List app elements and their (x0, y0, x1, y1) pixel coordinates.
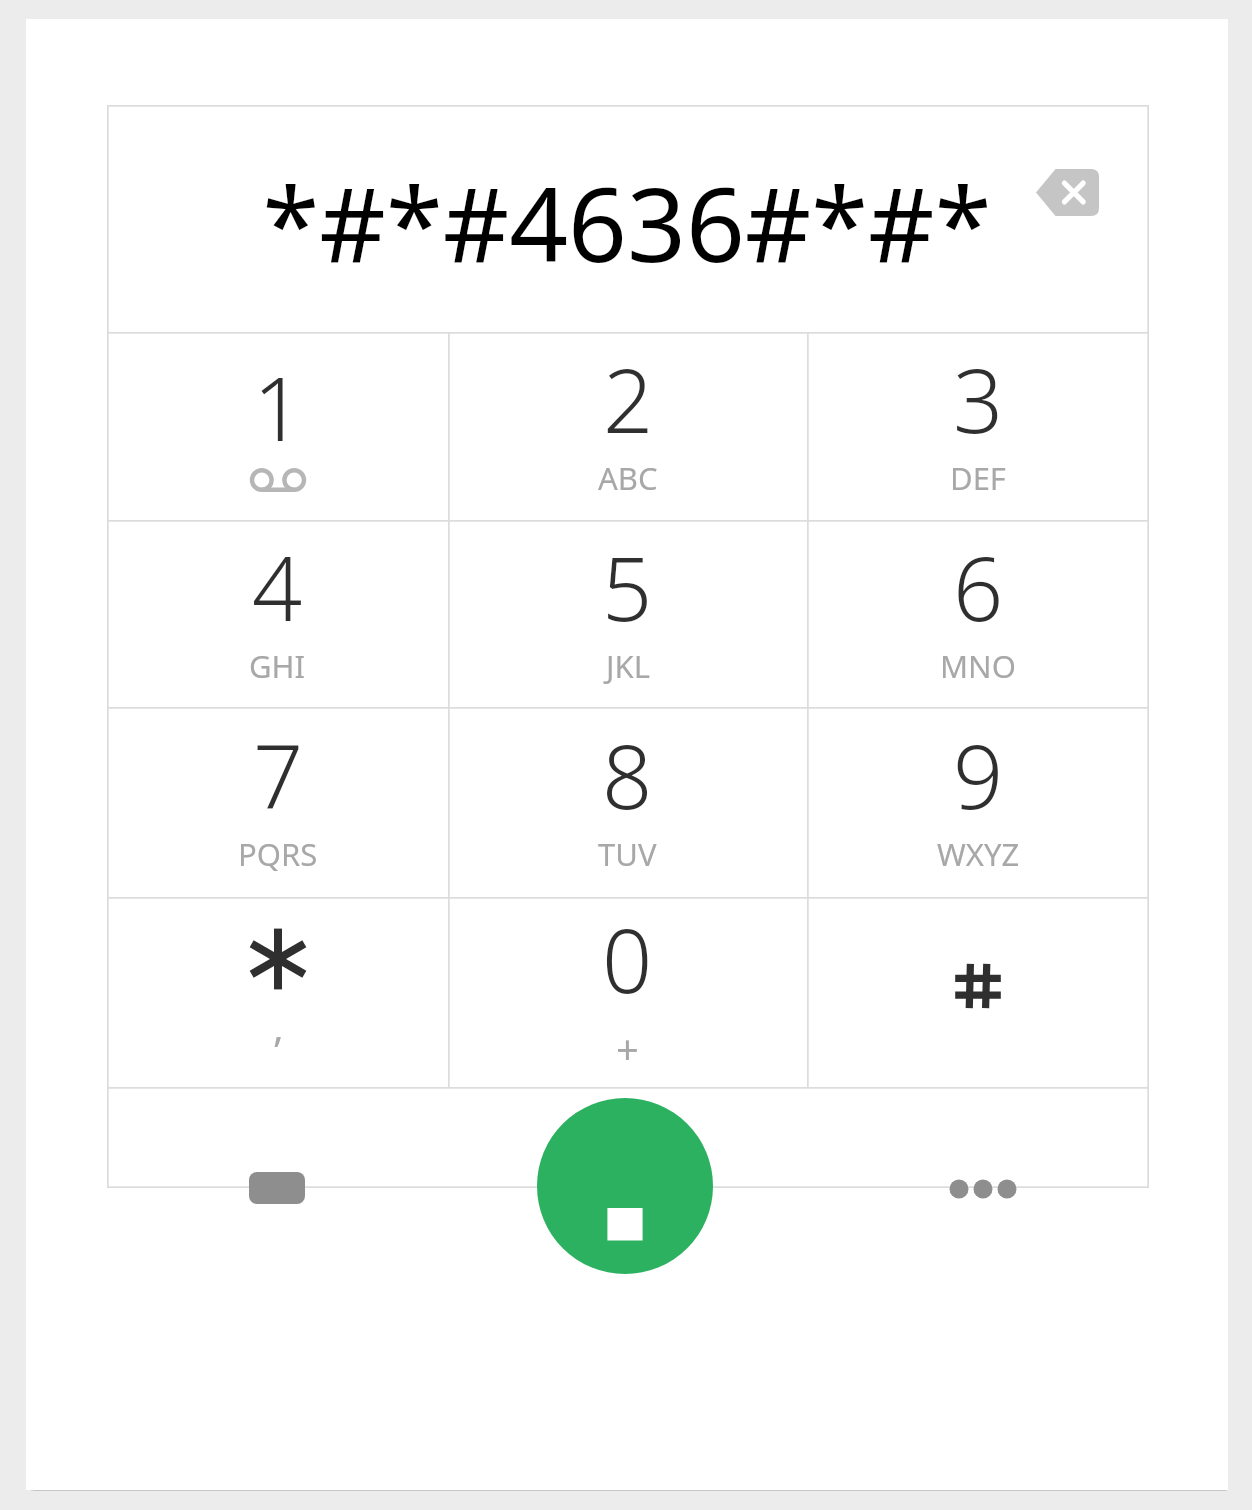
staticText: 4 (252, 527, 303, 647)
button[interactable]: 7 (107, 707, 448, 897)
staticText: 8 (602, 715, 653, 835)
button[interactable]: 4 (107, 520, 448, 707)
button[interactable]: Hide dialpad (187, 1087, 367, 1188)
staticText: TUV (598, 833, 657, 875)
button[interactable]: 5 (448, 520, 807, 707)
staticText: 1 (253, 347, 304, 467)
button[interactable]: More options (893, 1087, 1073, 1188)
staticText: *#*#4636#*#* (247, 152, 1007, 292)
button[interactable]: , (107, 897, 448, 1087)
button[interactable]: 9 (807, 707, 1149, 897)
staticText: , (273, 999, 284, 1053)
staticText: 2 (603, 339, 654, 459)
staticText: MNO (940, 645, 1016, 687)
staticText: JKL (606, 645, 650, 687)
button[interactable]: 6 (807, 520, 1149, 707)
staticText: 0 (602, 899, 653, 1019)
staticText: 9 (953, 715, 1004, 835)
button[interactable]: Call (537, 1098, 713, 1188)
staticText: + (616, 1021, 639, 1075)
staticText: 5 (602, 527, 653, 647)
staticText: PQRS (238, 833, 318, 875)
button[interactable]: Backspace (1009, 137, 1125, 247)
button[interactable]: 3 (807, 332, 1149, 520)
button[interactable]: 2 (448, 332, 807, 520)
staticText: 3 (953, 339, 1004, 459)
button[interactable] (807, 897, 1149, 1087)
staticText: 6 (953, 527, 1004, 647)
staticText: WXYZ (937, 833, 1020, 875)
staticText: DEF (950, 457, 1006, 499)
staticText: 7 (253, 715, 304, 835)
staticText: GHI (249, 645, 306, 687)
button[interactable]: 1 (107, 332, 448, 520)
button[interactable]: 8 (448, 707, 807, 897)
button[interactable]: 0 (448, 897, 807, 1087)
staticText: ABC (598, 457, 658, 499)
